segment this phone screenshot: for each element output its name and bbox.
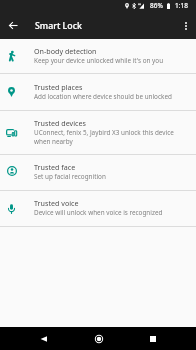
staticText: Set up facial recognition: [34, 172, 106, 181]
staticText: Trusted devices: [34, 118, 86, 128]
button[interactable]: Recent apps: [141, 327, 164, 350]
staticText: Trusted face: [34, 162, 76, 172]
button[interactable]: On-body detection: [0, 39, 196, 73]
button[interactable]: Trusted face: [0, 155, 196, 190]
button[interactable]: Home: [87, 327, 110, 350]
staticText: 1:18: [175, 1, 188, 10]
staticText: Add location where device should be unlo…: [34, 92, 172, 101]
staticText: Trusted voice: [34, 198, 79, 208]
button[interactable]: Trusted voice: [0, 191, 196, 226]
staticText: 86%: [150, 1, 163, 10]
button[interactable]: Trusted devices: [0, 111, 196, 154]
button[interactable]: Back: [32, 327, 55, 350]
button[interactable]: Navigate up: [4, 17, 21, 34]
staticText: Trusted places: [34, 82, 83, 92]
button[interactable]: Trusted places: [0, 74, 196, 110]
staticText: UConnect, fenix 5, Jaybird X3 unlock thi…: [34, 128, 182, 146]
button[interactable]: More options: [177, 17, 194, 34]
staticText: On-body detection: [34, 46, 97, 56]
staticText: Device will unlock when voice is recogni…: [34, 208, 163, 217]
staticText: Smart Lock: [35, 20, 82, 32]
staticText: Keep your device unlocked while it's on …: [34, 56, 164, 65]
